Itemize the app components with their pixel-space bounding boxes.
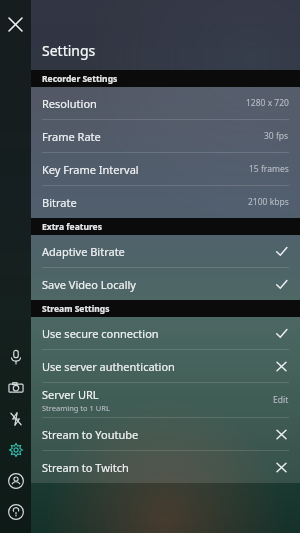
button[interactable]: Adaptive Bitrate [31, 235, 300, 267]
button[interactable]: Settings [0, 434, 31, 465]
staticText: Server URL [42, 387, 99, 402]
staticText: Use server authentication [42, 359, 175, 374]
button[interactable]: Microphone [0, 341, 31, 372]
staticText: Bitrate [42, 195, 77, 210]
button[interactable]: Use secure connection [31, 317, 300, 349]
staticText: Resolution [42, 96, 97, 111]
button[interactable]: Flash off [0, 403, 31, 434]
staticText: Key Frame Interval [42, 162, 139, 177]
button[interactable]: Server URL [31, 383, 300, 417]
staticText: Recorder Settings [42, 73, 118, 85]
staticText: Save Video Locally [42, 277, 136, 292]
button[interactable]: Help [0, 496, 31, 527]
staticText: Stream to Youtube [42, 427, 139, 442]
staticText: Stream to Twitch [42, 460, 129, 475]
button[interactable]: Stream to Youtube [31, 418, 300, 450]
staticText: Use secure connection [42, 326, 159, 341]
staticText: 15 frames [249, 163, 289, 175]
staticText: Edit [273, 394, 289, 406]
staticText: Stream Settings [42, 303, 110, 315]
staticText: Settings [42, 41, 96, 60]
button[interactable]: Key Frame Interval [31, 153, 300, 185]
button[interactable]: Close [0, 9, 31, 40]
button[interactable]: Camera [0, 372, 31, 403]
staticText: 30 fps [264, 130, 289, 142]
button[interactable]: Bitrate [31, 186, 300, 218]
button[interactable]: Account [0, 465, 31, 496]
button[interactable]: Use server authentication [31, 350, 300, 382]
staticText: Adaptive Bitrate [42, 244, 125, 259]
staticText: Frame Rate [42, 129, 101, 144]
button[interactable]: Save Video Locally [31, 268, 300, 300]
staticText: Extra features [42, 221, 102, 233]
button[interactable]: Resolution [31, 87, 300, 119]
staticText: 2100 kbps [248, 196, 289, 208]
staticText: Streaming to 1 URL [42, 403, 110, 413]
staticText: 1280 x 720 [246, 97, 289, 109]
button[interactable]: Frame Rate [31, 120, 300, 152]
button[interactable]: Stream to Twitch [31, 451, 300, 483]
